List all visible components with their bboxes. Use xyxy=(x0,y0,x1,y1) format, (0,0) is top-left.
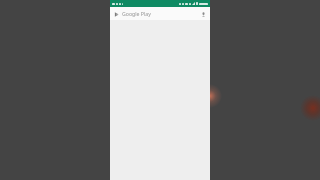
button[interactable]: Voice search xyxy=(199,10,207,18)
other: Google Play xyxy=(113,11,119,17)
button[interactable]: Google Play xyxy=(110,7,210,20)
staticText: Google Play xyxy=(122,10,151,17)
